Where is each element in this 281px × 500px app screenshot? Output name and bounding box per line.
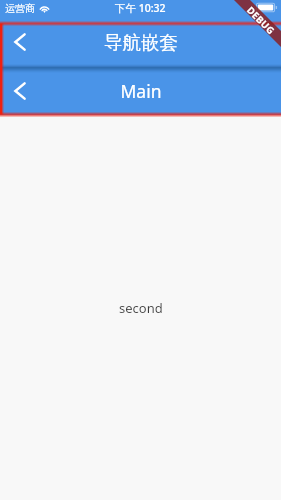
staticText: 运营商 (5, 2, 35, 15)
button[interactable]: Back (0, 71, 40, 111)
staticText: second (119, 299, 163, 317)
staticText: DEBUG (244, 4, 278, 38)
button[interactable]: Back (0, 22, 40, 62)
staticText: 下午 10:32 (115, 1, 166, 15)
staticText: Main (120, 79, 162, 103)
staticText: 导航嵌套 (104, 31, 178, 54)
